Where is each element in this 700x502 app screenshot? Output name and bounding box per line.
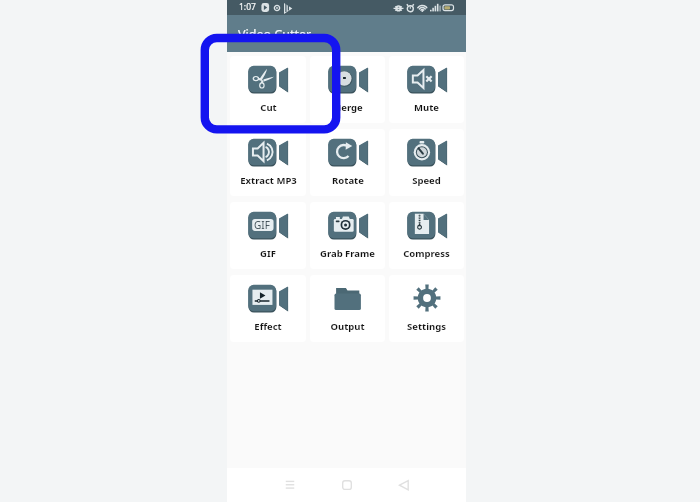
staticText: Extract MP3	[240, 174, 297, 187]
button[interactable]: Merge	[310, 56, 385, 123]
button[interactable]: Rotate	[310, 129, 385, 196]
button[interactable]: Cut	[230, 56, 306, 123]
staticText: Compress	[403, 247, 450, 260]
button[interactable]: Extract MP3	[230, 129, 306, 196]
button[interactable]: Settings	[389, 275, 464, 342]
staticText: Grab Frame	[320, 247, 375, 260]
staticText: Effect	[254, 320, 282, 333]
button[interactable]: Output	[310, 275, 385, 342]
button[interactable]: Mute	[389, 56, 464, 123]
button[interactable]: Speed	[389, 129, 464, 196]
staticText: Rotate	[332, 174, 364, 187]
button[interactable]: Home	[332, 470, 362, 500]
staticText: Mute	[414, 101, 439, 114]
button[interactable]: Grab Frame	[310, 202, 385, 269]
button[interactable]: GIF	[230, 202, 306, 269]
staticText: Output	[330, 320, 365, 333]
staticText: Cut	[260, 101, 277, 114]
button[interactable]: Effect	[230, 275, 306, 342]
button[interactable]: Recent apps	[275, 470, 305, 500]
staticText: Speed	[412, 174, 441, 187]
staticText: GIF	[254, 218, 270, 232]
button[interactable]: Compress	[389, 202, 464, 269]
staticText: GIF	[260, 247, 276, 260]
button[interactable]: Back	[389, 470, 419, 500]
staticText: Settings	[407, 320, 446, 333]
staticText: Video Cutter	[238, 26, 312, 43]
staticText: Merge	[332, 101, 363, 114]
staticText: 1:07	[239, 1, 256, 13]
